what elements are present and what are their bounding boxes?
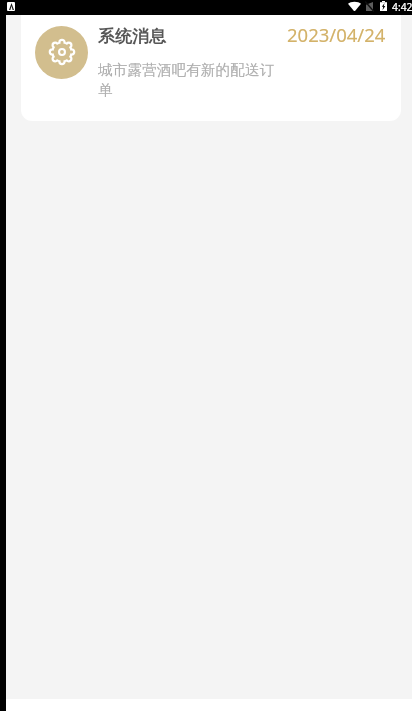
staticText: 系统消息 xyxy=(98,26,166,47)
other: System message xyxy=(49,39,75,65)
staticText: 4:42 xyxy=(392,0,412,14)
staticText: 城市露营酒吧有新的配送订单 xyxy=(98,61,280,99)
other: No mobile signal xyxy=(366,2,373,11)
button[interactable]: System message xyxy=(21,15,401,121)
other: Wi-Fi connected xyxy=(348,2,361,11)
staticText: 2023/04/24 xyxy=(287,22,386,47)
other: App notification xyxy=(7,2,15,11)
other: Battery charging xyxy=(380,1,387,11)
